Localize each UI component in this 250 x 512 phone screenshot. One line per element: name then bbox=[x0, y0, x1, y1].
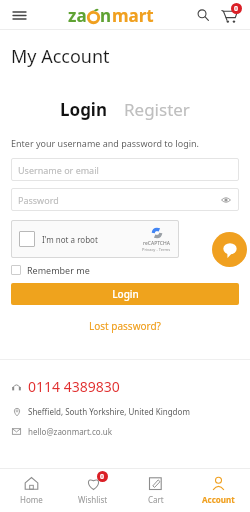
button[interactable]: 0 bbox=[62, 468, 124, 512]
button[interactable]: Home bbox=[0, 468, 62, 512]
staticText: Remember me bbox=[27, 264, 90, 276]
staticText: mart bbox=[112, 4, 154, 27]
button[interactable]: Search bbox=[193, 5, 213, 25]
button[interactable]: Login bbox=[56, 96, 112, 123]
staticText: Login bbox=[112, 287, 139, 301]
staticText: 0 bbox=[100, 472, 105, 482]
staticText: Password bbox=[18, 194, 59, 206]
button[interactable]: Lost password? bbox=[85, 315, 165, 337]
button[interactable]: Chat support bbox=[212, 232, 247, 267]
staticText: I'm not a robot bbox=[42, 234, 98, 245]
button[interactable]: Cart bbox=[219, 4, 241, 26]
staticText: Username or email bbox=[18, 164, 99, 176]
button[interactable]: 0114 4389830 bbox=[28, 377, 120, 396]
staticText: Cart bbox=[148, 494, 164, 505]
button[interactable]: Register bbox=[120, 96, 194, 123]
button[interactable]: Cart bbox=[124, 468, 187, 512]
staticText: Privacy - Terms bbox=[142, 247, 171, 252]
staticText: za bbox=[68, 4, 87, 27]
button[interactable]: I'm not a robot bbox=[11, 220, 179, 258]
staticText: Enter your username and password to logi… bbox=[11, 137, 199, 149]
staticText: Sheffield, South Yorkshire, United Kingd… bbox=[28, 406, 190, 417]
button[interactable]: Remember me bbox=[11, 264, 90, 276]
button[interactable]: hello@zaonmart.co.uk bbox=[28, 426, 112, 437]
button[interactable]: Menu bbox=[9, 5, 29, 25]
staticText: Wishlist bbox=[78, 494, 108, 505]
staticText: Register bbox=[124, 98, 190, 121]
button[interactable]: Username or email bbox=[11, 158, 239, 181]
staticText: 0 bbox=[234, 4, 239, 14]
staticText: reCAPTCHA bbox=[143, 240, 170, 247]
other: Show password bbox=[220, 194, 232, 206]
staticText: Home bbox=[20, 494, 43, 505]
staticText: Login bbox=[60, 98, 108, 121]
button[interactable]: Password bbox=[11, 188, 239, 211]
staticText: My Account bbox=[11, 44, 110, 69]
button[interactable]: Account bbox=[187, 468, 250, 512]
staticText: Account bbox=[202, 494, 235, 505]
button[interactable]: Login bbox=[11, 283, 239, 305]
staticText: n bbox=[100, 4, 112, 27]
staticText: Lost password? bbox=[89, 319, 161, 333]
